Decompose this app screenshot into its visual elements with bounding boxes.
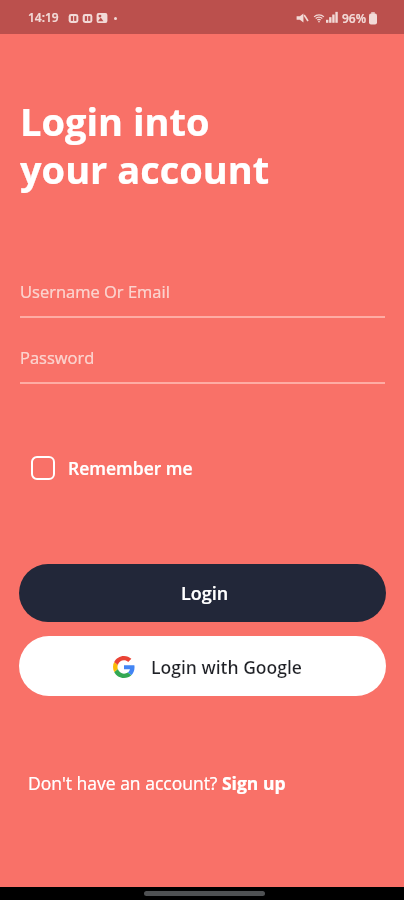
staticText: Login with Google bbox=[151, 655, 302, 679]
staticText: Don't have an account? Sign up bbox=[28, 771, 286, 795]
button[interactable]: Username Or Email bbox=[20, 280, 385, 318]
staticText: Login into your account bbox=[20, 95, 270, 196]
button[interactable]: Login with Google bbox=[19, 636, 386, 696]
staticText: Username Or Email bbox=[20, 280, 170, 302]
staticText: Password bbox=[20, 346, 95, 368]
staticText: Remember me bbox=[68, 456, 193, 480]
button[interactable]: Login bbox=[19, 564, 386, 622]
staticText: 96% bbox=[342, 10, 367, 26]
staticText: Login bbox=[181, 581, 229, 606]
button[interactable]: Password bbox=[20, 346, 385, 384]
staticText: 14:19 bbox=[28, 9, 59, 25]
button[interactable]: Don't have an account? Sign up bbox=[20, 766, 294, 800]
button[interactable]: Remember me bbox=[25, 450, 201, 486]
